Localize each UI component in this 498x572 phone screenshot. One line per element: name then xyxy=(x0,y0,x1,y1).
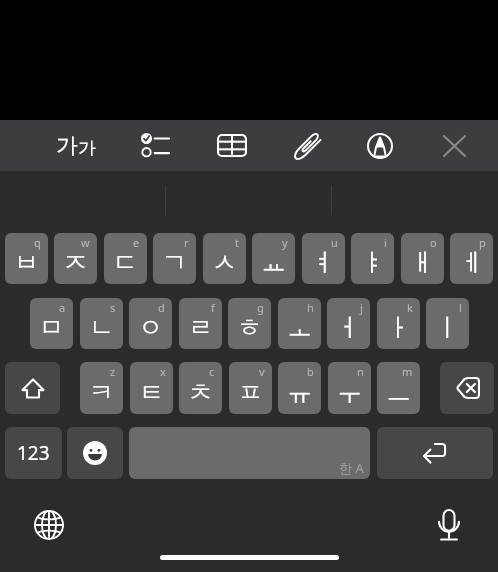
button[interactable]: k xyxy=(377,298,420,349)
staticText: d xyxy=(158,300,165,315)
staticText: w xyxy=(81,235,90,250)
button[interactable]: f xyxy=(179,298,222,349)
staticText: i xyxy=(384,235,387,250)
button[interactable]: 123 xyxy=(5,427,62,479)
staticText: ㅜ xyxy=(337,377,362,408)
button[interactable]: j xyxy=(327,298,370,349)
button[interactable]: p xyxy=(450,233,493,284)
button[interactable]: y xyxy=(252,233,295,284)
staticText: ㅍ xyxy=(238,377,263,408)
staticText: s xyxy=(110,300,116,315)
staticText: m xyxy=(402,364,413,379)
staticText: a xyxy=(59,300,66,315)
staticText: ㅡ xyxy=(386,377,411,408)
staticText: 가 xyxy=(78,137,96,160)
button[interactable]: Emoji xyxy=(67,427,123,479)
staticText: l xyxy=(459,300,462,315)
staticText: z xyxy=(110,364,116,379)
staticText: n xyxy=(357,364,364,379)
staticText: ㅠ xyxy=(287,377,312,408)
staticText: r xyxy=(184,235,189,250)
button[interactable]: l xyxy=(426,298,469,349)
button[interactable]: e xyxy=(104,233,147,284)
staticText: ㅈ xyxy=(63,247,88,278)
button[interactable]: a xyxy=(30,298,73,349)
staticText: ㅣ xyxy=(435,312,460,343)
staticText: x xyxy=(160,364,166,379)
button[interactable]: n xyxy=(328,362,371,414)
staticText: ㅅ xyxy=(212,247,237,278)
staticText: ㄹ xyxy=(188,312,213,343)
staticText: ㅛ xyxy=(261,247,286,278)
button[interactable]: i xyxy=(351,233,394,284)
button[interactable]: o xyxy=(401,233,444,284)
staticText: ㅇ xyxy=(138,312,163,343)
button[interactable]: 한 A xyxy=(129,427,370,479)
staticText: o xyxy=(430,235,437,250)
button[interactable]: b xyxy=(278,362,321,414)
button[interactable]: Table xyxy=(208,120,256,171)
staticText: ㄱ xyxy=(162,247,187,278)
button[interactable]: 가 xyxy=(50,120,100,171)
staticText: ㅏ xyxy=(386,312,411,343)
button[interactable]: m xyxy=(377,362,420,414)
button[interactable]: x xyxy=(130,362,173,414)
staticText: ㅊ xyxy=(188,377,213,408)
button[interactable]: Close xyxy=(430,120,478,171)
staticText: e xyxy=(133,235,140,250)
button[interactable]: Attach file xyxy=(284,120,332,171)
staticText: t xyxy=(235,235,239,250)
staticText: g xyxy=(257,300,264,315)
staticText: ㅕ xyxy=(311,247,336,278)
staticText: ㅁ xyxy=(39,312,64,343)
staticText: j xyxy=(360,300,363,315)
staticText: ㄷ xyxy=(113,247,138,278)
button[interactable]: w xyxy=(54,233,97,284)
button[interactable]: s xyxy=(80,298,123,349)
staticText: h xyxy=(307,300,314,315)
button[interactable]: Next keyboard xyxy=(33,509,65,541)
button[interactable]: Checklist xyxy=(131,120,179,171)
button[interactable]: q xyxy=(5,233,48,284)
staticText: v xyxy=(259,364,265,379)
staticText: c xyxy=(209,364,215,379)
button[interactable]: c xyxy=(179,362,222,414)
button[interactable]: d xyxy=(129,298,172,349)
staticText: 한 A xyxy=(339,459,364,477)
staticText: u xyxy=(331,235,338,250)
staticText: p xyxy=(479,235,486,250)
button[interactable]: Backspace xyxy=(440,362,494,414)
staticText: ㅂ xyxy=(14,247,39,278)
staticText: y xyxy=(282,235,288,250)
staticText: ㄴ xyxy=(89,312,114,343)
staticText: ㅔ xyxy=(459,247,484,278)
button[interactable]: g xyxy=(228,298,271,349)
staticText: ㅌ xyxy=(139,377,164,408)
staticText: ㅎ xyxy=(237,312,262,343)
button[interactable]: Markup xyxy=(356,120,404,171)
staticText: b xyxy=(307,364,314,379)
staticText: q xyxy=(34,235,41,250)
button[interactable]: Shift xyxy=(5,362,60,414)
staticText: f xyxy=(211,300,215,315)
staticText: k xyxy=(407,300,413,315)
staticText: 123 xyxy=(17,440,50,466)
staticText: ㅑ xyxy=(360,247,385,278)
staticText: ㅗ xyxy=(287,312,312,343)
staticText: ㅋ xyxy=(89,377,114,408)
button[interactable]: Return xyxy=(377,427,493,479)
staticText: ㅐ xyxy=(410,247,435,278)
button[interactable]: h xyxy=(278,298,321,349)
button[interactable]: u xyxy=(302,233,345,284)
staticText: 가 xyxy=(56,132,78,160)
button[interactable]: v xyxy=(229,362,272,414)
button[interactable]: r xyxy=(153,233,196,284)
button[interactable]: t xyxy=(203,233,246,284)
staticText: ㅓ xyxy=(336,312,361,343)
button[interactable]: z xyxy=(80,362,123,414)
button[interactable]: Dictation xyxy=(433,505,465,545)
